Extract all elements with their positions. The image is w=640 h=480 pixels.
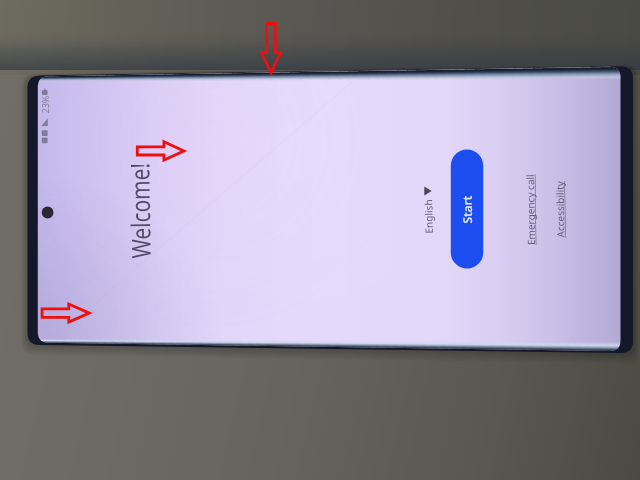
- button[interactable]: Start: [448, 147, 486, 271]
- button[interactable]: Emergency call: [524, 172, 546, 248]
- button[interactable]: Accessibility: [552, 177, 574, 245]
- button[interactable]: English, change language: [418, 183, 442, 239]
